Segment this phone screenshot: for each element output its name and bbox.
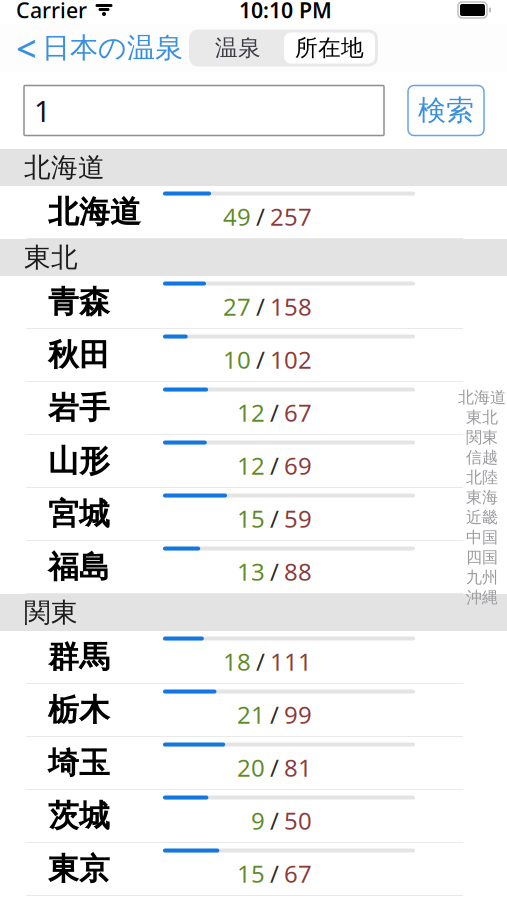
button[interactable]: 温泉 <box>192 32 284 63</box>
staticText: 27 <box>223 291 251 322</box>
button[interactable]: 1 <box>24 85 384 135</box>
staticText: / <box>270 397 279 428</box>
button[interactable]: Jump to 四国 <box>458 548 506 567</box>
staticText: 栃木 <box>48 691 110 729</box>
staticText: 近畿 <box>466 508 498 527</box>
staticText: 69 <box>284 450 312 481</box>
staticText: 15 <box>237 858 265 889</box>
staticText: 81 <box>284 752 312 783</box>
staticText: 秋田 <box>48 336 110 374</box>
staticText: / <box>270 450 279 481</box>
button[interactable]: 秋田 <box>0 329 507 382</box>
staticText: 9 <box>251 805 265 836</box>
staticText: 温泉 <box>215 34 261 62</box>
button[interactable]: 青森 <box>0 276 507 329</box>
staticText: 20 <box>237 752 265 783</box>
button[interactable]: Jump to 沖縄 <box>458 588 506 607</box>
staticText: 21 <box>237 699 265 730</box>
staticText: 49 <box>223 201 251 232</box>
button[interactable]: 検索 <box>408 85 484 135</box>
staticText: / <box>270 556 279 587</box>
staticText: / <box>256 344 265 375</box>
staticText: 北海道 <box>24 151 105 184</box>
staticText: 東海 <box>466 488 498 507</box>
button[interactable]: 山形 <box>0 435 507 488</box>
staticText: 日本の温泉 <box>42 31 183 65</box>
staticText: 埼玉 <box>48 744 110 782</box>
button[interactable]: 茨城 <box>0 790 507 843</box>
staticText: 50 <box>284 805 312 836</box>
staticText: 岩手 <box>48 389 110 427</box>
staticText: 1 <box>34 91 51 130</box>
button[interactable]: Jump to 関東 <box>458 428 506 447</box>
staticText: 10:10 PM <box>239 0 332 24</box>
staticText: 青森 <box>48 283 110 321</box>
staticText: 67 <box>284 858 312 889</box>
staticText: 13 <box>237 556 265 587</box>
staticText: 18 <box>223 646 251 677</box>
button[interactable]: Jump to 近畿 <box>458 508 506 527</box>
button[interactable]: 東京 <box>0 843 507 896</box>
staticText: 15 <box>237 503 265 534</box>
staticText: 102 <box>270 344 312 375</box>
staticText: 158 <box>270 291 312 322</box>
staticText: 中国 <box>466 528 498 547</box>
staticText: 67 <box>284 397 312 428</box>
staticText: / <box>256 201 265 232</box>
staticText: 所在地 <box>295 34 364 62</box>
button[interactable]: 群馬 <box>0 631 507 684</box>
staticText: 関東 <box>466 428 498 447</box>
staticText: / <box>256 646 265 677</box>
staticText: 99 <box>284 699 312 730</box>
staticText: / <box>270 752 279 783</box>
staticText: / <box>270 503 279 534</box>
staticText: 沖縄 <box>466 588 498 607</box>
staticText: / <box>270 699 279 730</box>
staticText: Carrier <box>16 0 87 24</box>
staticText: 検索 <box>418 93 474 128</box>
button[interactable]: 所在地 <box>284 32 375 63</box>
staticText: 257 <box>270 201 312 232</box>
staticText: 信越 <box>466 448 498 467</box>
staticText: 12 <box>237 450 265 481</box>
staticText: 10 <box>223 344 251 375</box>
staticText: 北海道 <box>458 388 506 407</box>
staticText: / <box>256 291 265 322</box>
button[interactable]: 宮城 <box>0 488 507 541</box>
staticText: 九州 <box>466 568 498 587</box>
button[interactable]: 岩手 <box>0 382 507 435</box>
staticText: / <box>270 858 279 889</box>
staticText: 東北 <box>24 241 78 274</box>
button[interactable]: Jump to 東海 <box>458 488 506 507</box>
staticText: 111 <box>270 646 312 677</box>
staticText: < <box>16 24 37 72</box>
button[interactable]: Jump to 九州 <box>458 568 506 587</box>
staticText: 福島 <box>48 548 110 586</box>
staticText: 北海道 <box>48 193 141 231</box>
staticText: 山形 <box>48 442 110 480</box>
button[interactable]: Jump to 中国 <box>458 528 506 547</box>
staticText: 関東 <box>24 596 78 629</box>
staticText: 北陸 <box>466 468 498 487</box>
button[interactable]: 栃木 <box>0 684 507 737</box>
button[interactable]: Jump to 東北 <box>458 408 506 427</box>
button[interactable]: 福島 <box>0 541 507 594</box>
staticText: 東京 <box>48 850 110 888</box>
staticText: 東北 <box>466 408 498 427</box>
button[interactable]: Jump to 北海道 <box>458 388 506 407</box>
staticText: 88 <box>284 556 312 587</box>
button[interactable]: Jump to 信越 <box>458 448 506 467</box>
button[interactable]: Jump to 北陸 <box>458 468 506 487</box>
staticText: 59 <box>284 503 312 534</box>
button[interactable]: < <box>0 24 189 72</box>
staticText: 宮城 <box>48 495 110 533</box>
staticText: 群馬 <box>48 638 110 676</box>
button[interactable]: 北海道 <box>0 186 507 239</box>
staticText: / <box>270 805 279 836</box>
staticText: 12 <box>237 397 265 428</box>
staticText: 四国 <box>466 548 498 567</box>
button[interactable]: 埼玉 <box>0 737 507 790</box>
staticText: 茨城 <box>48 797 110 835</box>
